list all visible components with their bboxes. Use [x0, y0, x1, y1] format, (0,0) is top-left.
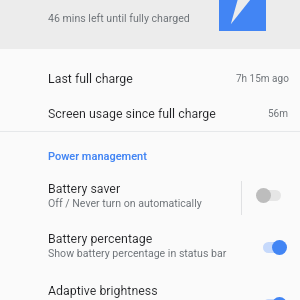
button[interactable]: Screen usage since full charge — [0, 96, 300, 131]
button[interactable]: Battery percentage — [243, 222, 300, 272]
staticText: Battery saver — [48, 181, 121, 196]
staticText: Last full charge — [48, 71, 236, 86]
staticText: Show battery percentage in status bar — [48, 247, 227, 259]
staticText: 46 mins left until fully charged — [48, 12, 190, 24]
staticText: Off / Never turn on automatically — [48, 197, 202, 209]
staticText: Power management — [48, 150, 147, 163]
staticText: 56m — [268, 108, 289, 120]
button[interactable]: Battery saver — [0, 170, 300, 220]
staticText: Battery percentage — [48, 231, 153, 246]
button[interactable]: Adaptive brightness — [243, 279, 300, 300]
button[interactable]: Power management — [0, 142, 300, 171]
staticText: 7h 15m ago — [236, 73, 289, 85]
button[interactable]: Last full charge — [0, 61, 300, 96]
staticText: Screen usage since full charge — [48, 106, 268, 121]
staticText: Adaptive brightness — [48, 283, 158, 298]
button[interactable]: Adaptive brightness — [0, 272, 300, 300]
button[interactable]: Battery percentage — [0, 220, 300, 270]
button[interactable]: Battery saver — [243, 170, 300, 220]
